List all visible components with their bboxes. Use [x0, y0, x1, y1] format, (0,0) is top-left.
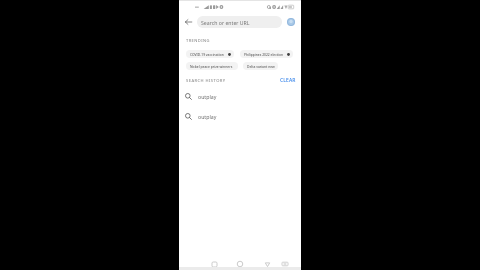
- staticText: Search or enter URL: [201, 19, 250, 26]
- button[interactable]: Back: [181, 14, 196, 29]
- button[interactable]: outplay: [179, 107, 301, 126]
- button[interactable]: Home: [234, 258, 246, 270]
- button[interactable]: outplay: [179, 87, 301, 106]
- staticText: Philippines 2022 election: [244, 52, 284, 56]
- button[interactable]: Search or enter URL: [197, 16, 282, 28]
- button[interactable]: CLEAR: [279, 76, 297, 85]
- staticText: outplay: [198, 113, 217, 120]
- staticText: TRENDING: [186, 38, 210, 43]
- button[interactable]: COVID-19 vaccination: [186, 50, 234, 58]
- button[interactable]: Philippines 2022 election: [240, 50, 293, 58]
- button[interactable]: Recents: [208, 258, 220, 270]
- button[interactable]: Account: [284, 15, 297, 28]
- staticText: COVID-19 vaccination: [190, 52, 224, 56]
- staticText: CLEAR: [280, 77, 296, 84]
- button[interactable]: Delta variant news: [243, 62, 278, 70]
- staticText: outplay: [198, 93, 217, 100]
- staticText: SEARCH HISTORY: [186, 78, 226, 84]
- staticText: Delta variant news: [247, 64, 275, 68]
- staticText: Nobel peace prize winners: [190, 64, 233, 69]
- button[interactable]: Back: [261, 258, 273, 270]
- button[interactable]: Nobel peace prize winners: [186, 62, 238, 70]
- button[interactable]: Keyboard: [279, 258, 291, 270]
